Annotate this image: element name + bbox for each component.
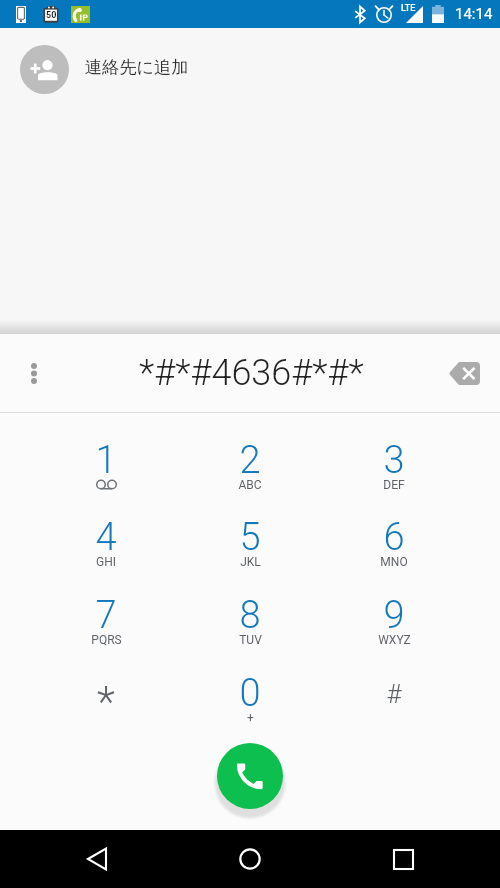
staticText: TUV <box>239 633 262 647</box>
button[interactable]: Call <box>217 743 283 809</box>
staticText: 8 <box>239 593 261 638</box>
button[interactable]: 2 <box>178 413 322 491</box>
button[interactable]: # <box>322 646 466 724</box>
button[interactable]: 5 <box>178 490 322 568</box>
staticText: GHI <box>96 555 116 569</box>
staticText: WXYZ <box>378 633 411 647</box>
button[interactable]: 8 <box>178 568 322 646</box>
button[interactable]: Backspace <box>428 334 500 412</box>
staticText: 0 <box>239 671 261 716</box>
staticText: 7 <box>95 593 117 638</box>
staticText: DEF <box>383 478 405 492</box>
staticText: 2 <box>239 438 261 483</box>
staticText: 4 <box>95 515 117 560</box>
button[interactable]: Recent apps <box>379 830 427 888</box>
button[interactable]: 連絡先に追加 <box>0 28 500 110</box>
staticText: 5 <box>239 515 261 560</box>
staticText: JKL <box>240 555 261 569</box>
button[interactable]: 3 <box>322 413 466 491</box>
button[interactable]: 7 <box>34 568 178 646</box>
staticText: # <box>386 679 402 709</box>
staticText: 50 <box>46 10 57 21</box>
button[interactable]: Home <box>226 830 274 888</box>
staticText: 6 <box>383 515 405 560</box>
staticText: + <box>247 711 254 725</box>
staticText: 9 <box>383 593 405 638</box>
staticText: 連絡先に追加 <box>85 56 189 78</box>
staticText: MNO <box>380 555 408 569</box>
button[interactable]: 1 <box>34 413 178 491</box>
staticText: * <box>97 677 115 726</box>
staticText: 3 <box>383 438 405 483</box>
button[interactable]: * <box>34 646 178 724</box>
staticText: 14:14 <box>455 5 493 23</box>
button[interactable]: 0 <box>178 646 322 724</box>
staticText: PQRS <box>91 633 122 647</box>
button[interactable]: 4 <box>34 490 178 568</box>
staticText: *#*#4636#*#* <box>139 352 364 394</box>
button[interactable]: 9 <box>322 568 466 646</box>
staticText: 1 <box>95 438 117 483</box>
button[interactable]: Back <box>73 830 121 888</box>
staticText: LTE <box>401 3 416 14</box>
button[interactable]: More options <box>0 334 68 412</box>
button[interactable]: 6 <box>322 490 466 568</box>
staticText: ABC <box>238 478 262 492</box>
